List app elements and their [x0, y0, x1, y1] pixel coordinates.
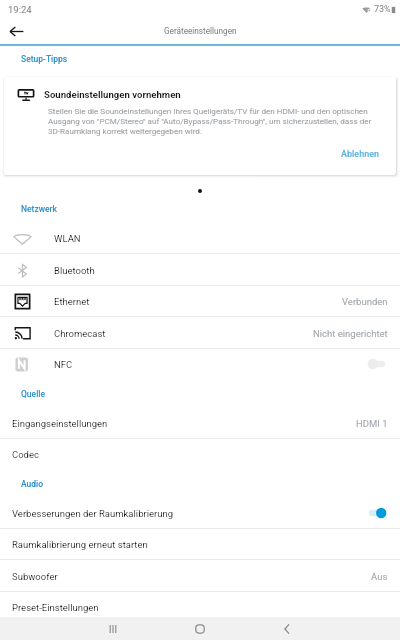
staticText: Verbesserungen der Raumkalibrierung: [12, 508, 174, 519]
staticText: Ethernet: [54, 296, 90, 307]
button[interactable]: Bluetooth: [0, 254, 400, 286]
staticText: 19:24: [8, 4, 32, 15]
staticText: Nicht eingerichtet: [313, 328, 388, 339]
staticText: Stellen Sie die Soundeinstellungen Ihres…: [48, 106, 376, 136]
button[interactable]: Home: [183, 617, 217, 640]
staticText: Preset-Einstellungen: [12, 602, 99, 613]
staticText: Soundeinstellungen vornehmen: [44, 89, 181, 100]
staticText: Eingangseinstellungen: [12, 418, 108, 429]
button[interactable]: Eingangseinstellungen: [0, 407, 400, 439]
staticText: Aus: [371, 571, 388, 582]
staticText: HDMI 1: [356, 418, 388, 429]
staticText: Setup-Tipps: [21, 54, 68, 64]
button[interactable]: Chromecast: [0, 317, 400, 349]
button[interactable]: Ethernet: [0, 285, 400, 317]
staticText: NFC: [54, 359, 73, 370]
staticText: Raumkalibrierung erneut starten: [12, 539, 148, 550]
staticText: Audio: [21, 479, 44, 489]
button[interactable]: Verbesserungen der Raumkalibrierung: [0, 497, 400, 529]
staticText: Codec: [12, 449, 39, 460]
button[interactable]: Codec: [0, 438, 400, 470]
staticText: 73%: [374, 4, 391, 15]
button[interactable]: Back: [2, 18, 30, 44]
staticText: Netzwerk: [21, 204, 57, 214]
button[interactable]: Raumkalibrierung erneut starten: [0, 528, 400, 560]
staticText: Bluetooth: [54, 265, 95, 276]
button[interactable]: Preset-Einstellungen: [0, 591, 400, 623]
button[interactable]: Recent apps: [96, 617, 130, 640]
staticText: Ablehnen: [341, 149, 379, 160]
button[interactable]: WLAN: [0, 222, 400, 254]
staticText: WLAN: [54, 233, 81, 244]
staticText: Chromecast: [54, 328, 106, 339]
button[interactable]: Back: [270, 617, 304, 640]
button[interactable]: Ablehnen: [335, 143, 385, 166]
staticText: Subwoofer: [12, 571, 58, 582]
staticText: Quelle: [21, 389, 46, 399]
staticText: Geräteeinstellungen: [164, 26, 237, 36]
button[interactable]: NFC: [0, 348, 400, 380]
button[interactable]: Subwoofer: [0, 560, 400, 592]
staticText: Verbunden: [342, 296, 388, 307]
